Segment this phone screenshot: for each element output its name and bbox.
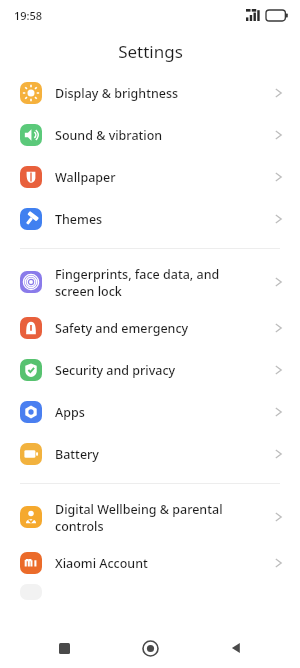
staticText: Sound & vibration [55, 127, 274, 144]
button[interactable]: Security and privacy [0, 349, 300, 391]
staticText: Digital Wellbeing & parental controls [55, 501, 274, 534]
staticText: Display & brightness [55, 85, 274, 102]
staticText: Themes [55, 211, 274, 228]
staticText: Security and privacy [55, 362, 274, 379]
button[interactable]: Battery [0, 433, 300, 475]
button[interactable] [0, 584, 300, 600]
staticText: Xiaomi Account [55, 555, 274, 572]
button[interactable]: Digital Wellbeing & parental controls [0, 492, 300, 542]
button[interactable]: Sound & vibration [0, 114, 300, 156]
button[interactable]: Fingerprints, face data, and screen lock [0, 257, 300, 307]
button[interactable]: Wallpaper [0, 156, 300, 198]
button[interactable]: Themes [0, 198, 300, 240]
staticText: Apps [55, 404, 274, 421]
button[interactable]: Xiaomi Account [0, 542, 300, 584]
button[interactable]: Safety and emergency [0, 307, 300, 349]
button[interactable]: Recent apps [42, 628, 86, 668]
button[interactable]: Apps [0, 391, 300, 433]
staticText: 19:58 [14, 8, 43, 23]
button[interactable]: Back [214, 628, 258, 668]
button[interactable]: Home [128, 628, 172, 668]
staticText: Wallpaper [55, 169, 274, 186]
staticText: Settings [118, 40, 183, 63]
button[interactable]: Display & brightness [0, 72, 300, 114]
staticText: Fingerprints, face data, and screen lock [55, 266, 274, 299]
staticText: Battery [55, 446, 274, 463]
staticText: Safety and emergency [55, 320, 274, 337]
